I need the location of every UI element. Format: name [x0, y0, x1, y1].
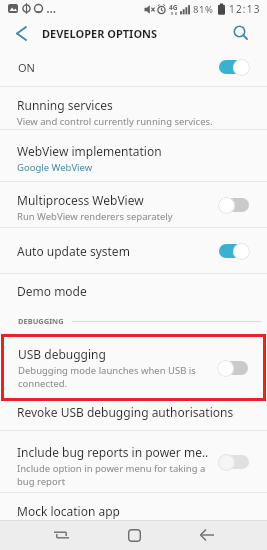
button[interactable] — [54, 530, 69, 540]
staticText: Include bug reports in power me.. — [17, 444, 209, 460]
staticText: Revoke USB debugging authorisations — [17, 404, 234, 420]
staticText: Demo mode — [17, 283, 87, 299]
staticText: DEBUGGING — [18, 316, 64, 326]
button[interactable] — [200, 529, 214, 541]
staticText: View and control currently running servi… — [17, 115, 213, 128]
button[interactable] — [128, 529, 141, 542]
button[interactable]: Revoke USB debugging authorisations — [0, 401, 267, 430]
staticText: Multiprocess WebView — [17, 192, 144, 208]
staticText: bug report — [17, 475, 66, 488]
button[interactable]: Auto update system — [0, 228, 267, 273]
button[interactable]: Multiprocess WebView — [0, 182, 267, 227]
staticText: Running services — [17, 97, 113, 113]
button[interactable]: ON — [0, 48, 267, 86]
button[interactable]: Include bug reports in power me.. — [0, 431, 267, 492]
staticText: 81% — [193, 3, 214, 16]
staticText: 12:13 — [229, 2, 261, 16]
button[interactable]: Running services — [0, 87, 267, 129]
staticText: Include option in power menu for taking … — [17, 462, 206, 475]
staticText: Mock location app — [17, 503, 120, 519]
staticText: Run WebView renderers separately — [17, 210, 173, 223]
button[interactable]: WebView implementation — [0, 130, 267, 181]
staticText: connected. — [18, 377, 68, 390]
staticText: Google WebView — [17, 161, 93, 174]
staticText: Debugging mode launches when USB is — [18, 364, 196, 377]
button[interactable]: USB debugging — [1, 334, 266, 401]
staticText: ON — [18, 60, 35, 75]
staticText: WebView implementation — [17, 143, 162, 159]
button[interactable]: Mock location app — [0, 493, 267, 520]
staticText: DEVELOPER OPTIONS — [42, 26, 158, 41]
staticText: Auto update system — [17, 243, 130, 259]
staticText: USB debugging — [18, 346, 106, 362]
button[interactable] — [234, 26, 248, 40]
button[interactable]: Demo mode — [0, 274, 267, 308]
staticText: 4G — [169, 3, 178, 12]
button[interactable] — [17, 27, 26, 40]
